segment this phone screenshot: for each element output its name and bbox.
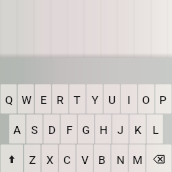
button[interactable] — [43, 114, 60, 143]
staticText: A — [13, 123, 21, 136]
button[interactable] — [77, 114, 94, 143]
button[interactable] — [155, 84, 172, 113]
staticText: W — [21, 93, 32, 106]
button[interactable] — [34, 84, 51, 113]
button[interactable] — [128, 145, 145, 172]
staticText: F — [66, 123, 73, 136]
staticText: R — [56, 93, 64, 106]
staticText: D — [48, 123, 56, 136]
button[interactable] — [86, 84, 103, 113]
button[interactable] — [129, 114, 146, 143]
staticText: B — [98, 153, 106, 166]
staticText: I — [127, 93, 131, 106]
staticText: Y — [91, 93, 99, 106]
button[interactable] — [0, 84, 17, 113]
button[interactable] — [58, 145, 75, 172]
staticText: E — [40, 93, 47, 106]
button[interactable] — [41, 145, 58, 172]
button[interactable] — [112, 114, 129, 143]
staticText: G — [82, 123, 90, 136]
staticText: N — [116, 153, 125, 166]
staticText: K — [134, 123, 142, 136]
button[interactable] — [138, 84, 155, 113]
staticText: C — [63, 153, 71, 166]
button[interactable] — [120, 84, 137, 113]
button[interactable] — [93, 145, 110, 172]
button[interactable] — [69, 84, 86, 113]
staticText: Q — [5, 93, 13, 106]
button[interactable]: Backspace — [146, 145, 172, 172]
button[interactable] — [60, 114, 77, 143]
button[interactable] — [17, 84, 34, 113]
staticText: P — [159, 93, 167, 106]
staticText: X — [46, 153, 54, 166]
button[interactable] — [9, 114, 26, 143]
button[interactable] — [103, 84, 120, 113]
button[interactable] — [95, 114, 112, 143]
button[interactable] — [146, 114, 163, 143]
staticText: U — [108, 93, 116, 106]
staticText: M — [132, 153, 143, 166]
button[interactable] — [26, 114, 43, 143]
staticText: O — [142, 93, 150, 106]
staticText: J — [117, 123, 124, 136]
button[interactable] — [111, 145, 128, 172]
staticText: T — [73, 93, 81, 106]
staticText: Z — [29, 153, 36, 166]
staticText: H — [99, 123, 108, 136]
button[interactable]: Shift — [0, 145, 24, 172]
staticText: L — [152, 123, 159, 136]
staticText: S — [31, 123, 38, 136]
button[interactable] — [24, 145, 41, 172]
button[interactable] — [52, 84, 69, 113]
staticText: V — [81, 153, 89, 166]
button[interactable] — [76, 145, 93, 172]
